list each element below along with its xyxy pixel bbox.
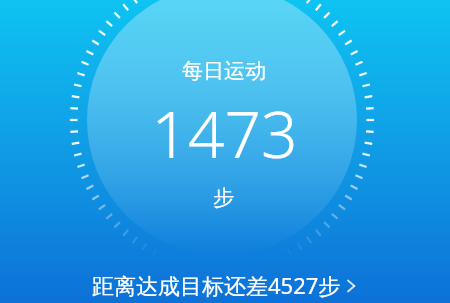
- staticText: 每日运动: [182, 58, 266, 84]
- staticText: 步: [213, 185, 234, 211]
- staticText: 距离达成目标还差4527步: [92, 270, 341, 300]
- button[interactable]: 距离达成目标还差4527步: [0, 267, 450, 303]
- staticText: 1473: [151, 90, 298, 177]
- other: 查看步数详情: [344, 273, 358, 297]
